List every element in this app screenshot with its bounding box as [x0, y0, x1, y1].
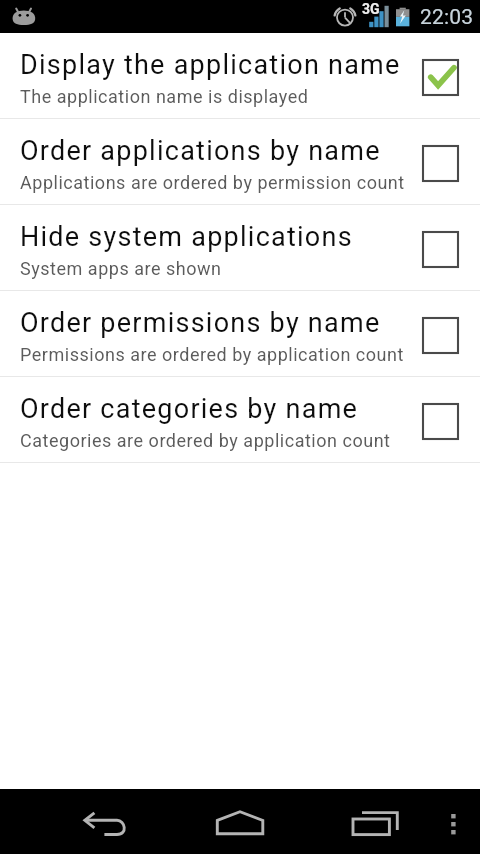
staticText: Order categories by name [20, 393, 359, 425]
button[interactable]: Back [69, 789, 144, 854]
staticText: The application name is displayed [20, 86, 309, 107]
button[interactable]: Display the application name [0, 33, 480, 118]
staticText: Applications are ordered by permission c… [20, 172, 405, 193]
button[interactable]: Order permissions by name [0, 291, 480, 376]
staticText: Order applications by name [20, 135, 381, 167]
staticText: Hide system applications [20, 221, 353, 253]
staticText: Categories are ordered by application co… [20, 430, 391, 451]
button[interactable]: Home [206, 789, 274, 854]
button[interactable]: Order categories by name [0, 377, 480, 462]
staticText: 3G [362, 1, 380, 17]
button[interactable]: More options [430, 789, 480, 854]
button[interactable]: Order applications by name [0, 119, 480, 204]
button[interactable]: Hide system applications [0, 205, 480, 290]
staticText: Permissions are ordered by application c… [20, 344, 404, 365]
staticText: Display the application name [20, 49, 401, 81]
staticText: Order permissions by name [20, 307, 381, 339]
staticText: System apps are shown [20, 258, 222, 279]
staticText: 22:03 [420, 5, 474, 30]
button[interactable]: Recent apps [345, 789, 405, 854]
